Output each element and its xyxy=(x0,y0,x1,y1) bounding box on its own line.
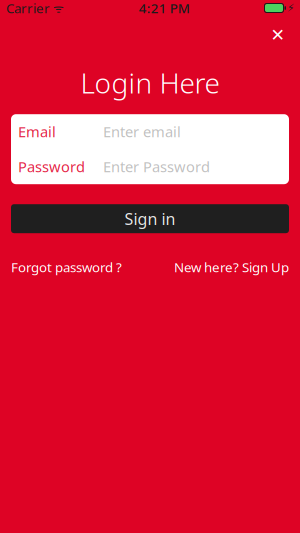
staticText: New here? Sign Up xyxy=(174,258,289,276)
staticText: ✕ xyxy=(270,25,285,45)
staticText: ᯤ xyxy=(50,0,64,16)
staticText: ⚡︎ xyxy=(287,2,294,14)
staticText: Forgot password ? xyxy=(11,258,122,276)
staticText: Enter email xyxy=(103,122,181,141)
staticText: Carrier xyxy=(6,0,50,17)
staticText: Sign in xyxy=(124,208,175,229)
staticText: 4:21 PM xyxy=(139,0,190,17)
button[interactable]: Sign in xyxy=(11,204,289,233)
staticText: Email xyxy=(18,122,56,141)
staticText: Enter Password xyxy=(103,157,210,176)
staticText: Password xyxy=(18,157,85,176)
button[interactable]: Close xyxy=(263,20,293,50)
button[interactable]: Forgot password ? xyxy=(11,258,122,276)
staticText: Login Here xyxy=(80,64,219,101)
button[interactable]: New here? Sign Up xyxy=(174,258,289,276)
